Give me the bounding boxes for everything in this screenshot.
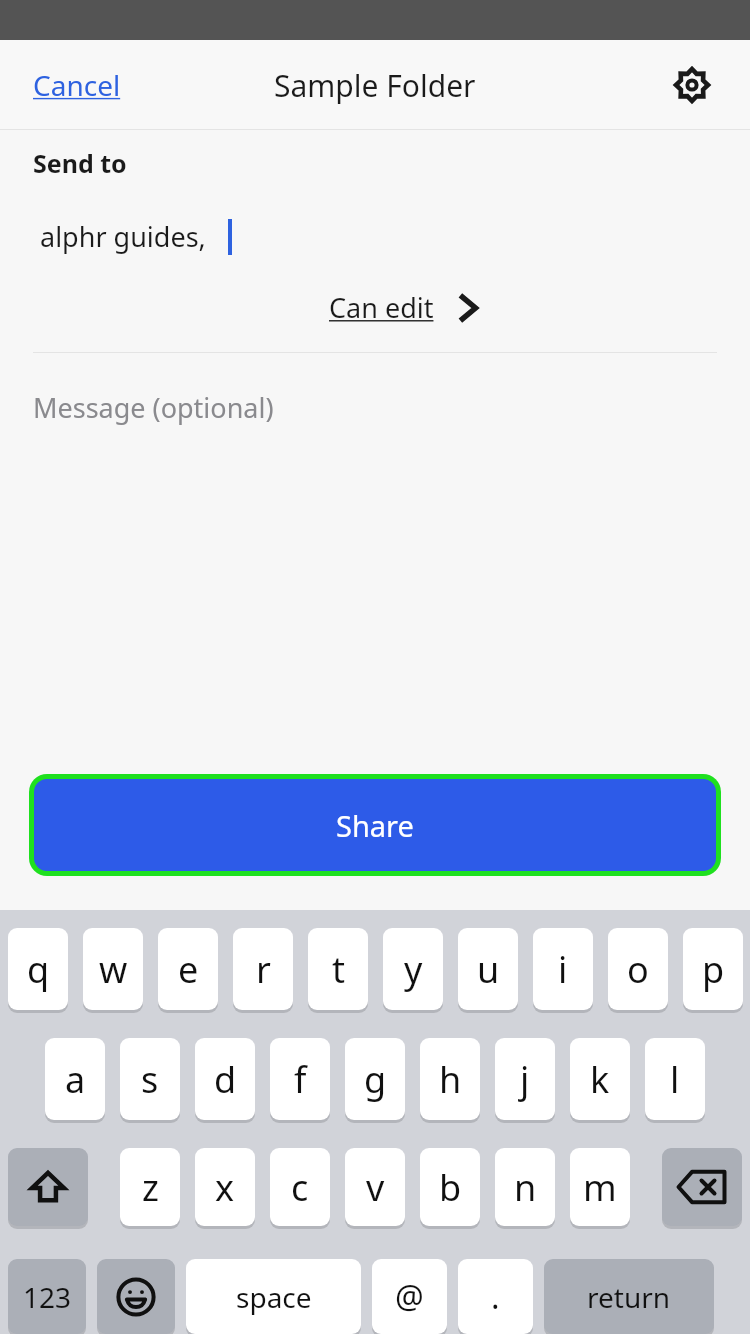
button[interactable]: 123 bbox=[8, 1259, 86, 1334]
staticText: k bbox=[590, 1055, 610, 1104]
button[interactable]: z bbox=[120, 1148, 180, 1226]
staticText: 123 bbox=[23, 1278, 72, 1316]
staticText: space bbox=[236, 1278, 312, 1316]
staticText: Can edit bbox=[329, 289, 434, 326]
staticText: v bbox=[366, 1163, 385, 1212]
staticText: return bbox=[587, 1278, 671, 1316]
staticText: Share bbox=[336, 806, 414, 845]
button[interactable]: w bbox=[83, 928, 143, 1010]
button[interactable]: f bbox=[270, 1038, 330, 1120]
staticText: f bbox=[294, 1055, 307, 1104]
staticText: o bbox=[627, 945, 649, 994]
button[interactable] bbox=[8, 1148, 88, 1226]
staticText: d bbox=[214, 1055, 237, 1104]
other: Shift bbox=[8, 1148, 88, 1226]
button[interactable] bbox=[97, 1259, 175, 1334]
button[interactable]: Message (optional) bbox=[33, 389, 274, 426]
button[interactable]: c bbox=[270, 1148, 330, 1226]
button[interactable]: m bbox=[570, 1148, 630, 1226]
button[interactable]: q bbox=[8, 928, 68, 1010]
staticText: j bbox=[520, 1055, 530, 1104]
button[interactable]: Cancel bbox=[33, 66, 121, 104]
button[interactable]: k bbox=[570, 1038, 630, 1120]
staticText: a bbox=[65, 1055, 86, 1104]
staticText: @ bbox=[395, 1275, 424, 1319]
button[interactable]: g bbox=[345, 1038, 405, 1120]
button[interactable]: d bbox=[195, 1038, 255, 1120]
staticText: l bbox=[670, 1055, 680, 1104]
button[interactable]: e bbox=[158, 928, 218, 1010]
button[interactable]: space bbox=[186, 1259, 361, 1334]
button[interactable]: . bbox=[458, 1259, 533, 1334]
staticText: n bbox=[514, 1163, 537, 1212]
button[interactable] bbox=[662, 1148, 742, 1226]
button[interactable]: b bbox=[420, 1148, 480, 1226]
staticText: p bbox=[702, 945, 725, 994]
staticText: e bbox=[178, 945, 199, 994]
staticText: w bbox=[99, 945, 128, 994]
staticText: Cancel bbox=[33, 66, 121, 104]
button[interactable]: h bbox=[420, 1038, 480, 1120]
button[interactable]: j bbox=[495, 1038, 555, 1120]
other: Backspace bbox=[662, 1148, 742, 1226]
staticText: Send to bbox=[33, 146, 127, 180]
button[interactable]: u bbox=[458, 928, 518, 1010]
button[interactable]: p bbox=[683, 928, 743, 1010]
staticText: Sample Folder bbox=[274, 65, 476, 106]
button[interactable]: l bbox=[645, 1038, 705, 1120]
button[interactable]: t bbox=[308, 928, 368, 1010]
button[interactable]: r bbox=[233, 928, 293, 1010]
other: Emoji bbox=[97, 1259, 175, 1334]
button[interactable]: n bbox=[495, 1148, 555, 1226]
button[interactable]: x bbox=[195, 1148, 255, 1226]
button[interactable]: Share bbox=[34, 779, 716, 871]
staticText: z bbox=[142, 1163, 159, 1212]
staticText: . bbox=[491, 1275, 500, 1319]
button[interactable]: Settings bbox=[670, 63, 714, 107]
staticText: c bbox=[291, 1163, 309, 1212]
staticText: y bbox=[404, 945, 423, 994]
button[interactable]: i bbox=[533, 928, 593, 1010]
staticText: alphr guides, bbox=[40, 218, 206, 255]
staticText: q bbox=[27, 945, 50, 994]
staticText: t bbox=[332, 945, 345, 994]
button[interactable]: o bbox=[608, 928, 668, 1010]
staticText: m bbox=[583, 1163, 617, 1212]
staticText: x bbox=[215, 1163, 235, 1212]
staticText: h bbox=[439, 1055, 462, 1104]
staticText: g bbox=[364, 1055, 387, 1104]
button[interactable]: Can edit bbox=[325, 287, 486, 328]
staticText: s bbox=[141, 1055, 159, 1104]
staticText: b bbox=[439, 1163, 462, 1212]
button[interactable]: @ bbox=[372, 1259, 447, 1334]
button[interactable]: y bbox=[383, 928, 443, 1010]
staticText: i bbox=[558, 945, 568, 994]
button[interactable]: v bbox=[345, 1148, 405, 1226]
button[interactable]: a bbox=[45, 1038, 105, 1120]
button[interactable]: return bbox=[544, 1259, 714, 1334]
staticText: r bbox=[256, 945, 271, 994]
staticText: u bbox=[477, 945, 500, 994]
button[interactable]: s bbox=[120, 1038, 180, 1120]
